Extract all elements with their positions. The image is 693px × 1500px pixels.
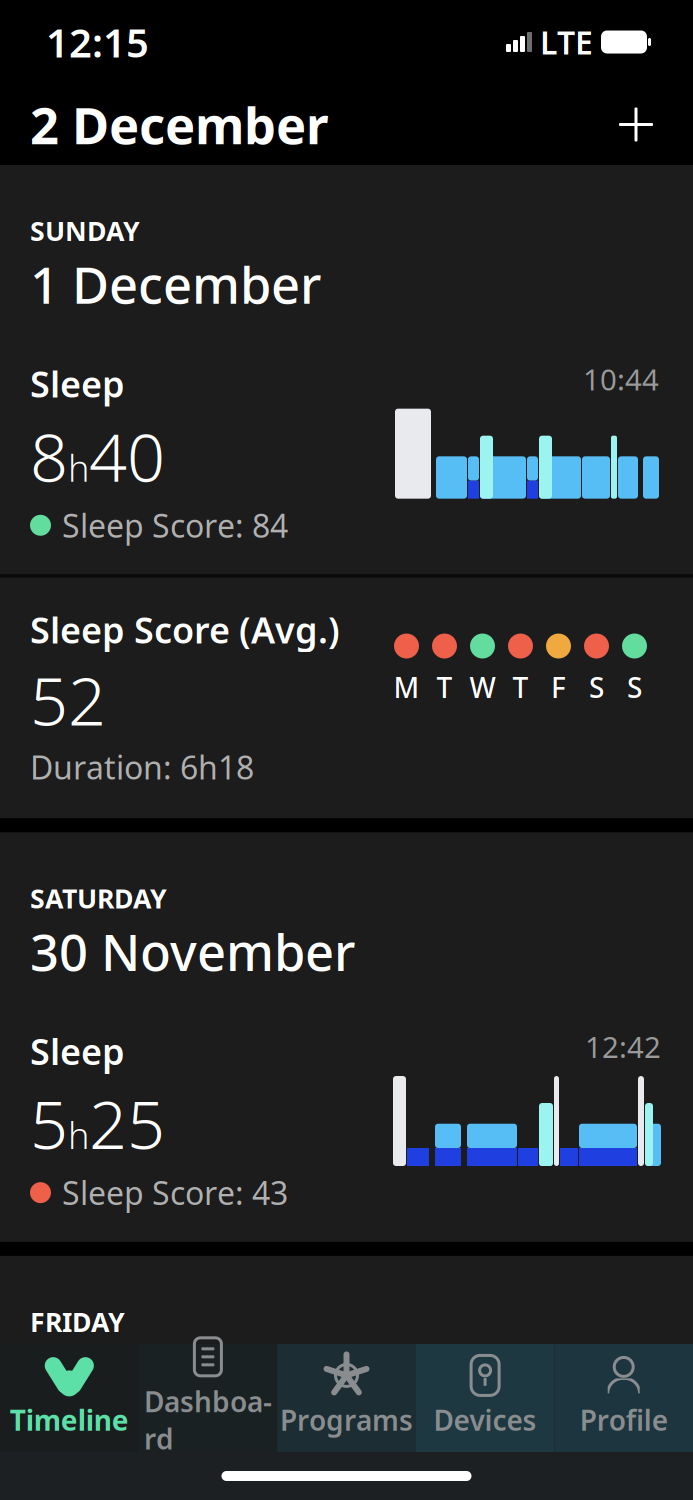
- button[interactable]: Programs: [277, 1349, 416, 1443]
- staticText: SUNDAY: [30, 213, 140, 248]
- staticText: 40: [89, 411, 165, 500]
- staticText: 52: [30, 655, 106, 744]
- button[interactable]: Devices: [416, 1349, 554, 1443]
- staticText: 29 November: [30, 1341, 355, 1409]
- staticText: Devices: [434, 1401, 537, 1439]
- button[interactable]: FRIDAY: [0, 1256, 693, 1500]
- staticText: W: [469, 668, 495, 706]
- staticText: Programs: [280, 1401, 413, 1439]
- staticText: h: [68, 1111, 89, 1159]
- staticText: Sleep Score: 84: [62, 504, 288, 546]
- staticText: Sleep Score: 43: [62, 1171, 288, 1214]
- staticText: 25: [89, 1079, 165, 1167]
- staticText: LTE: [540, 21, 593, 63]
- button[interactable]: Profile: [554, 1349, 693, 1443]
- button[interactable]: Sleep Score (Avg.): [0, 577, 693, 818]
- staticText: Sleep: [30, 1027, 125, 1075]
- staticText: 8: [30, 411, 68, 500]
- button[interactable]: SATURDAY: [0, 832, 693, 1242]
- staticText: 10:44: [583, 360, 659, 399]
- staticText: Timeline: [10, 1401, 129, 1439]
- staticText: Sleep: [30, 360, 125, 407]
- button[interactable]: Dashboard: [139, 1331, 277, 1461]
- staticText: 1 December: [30, 250, 321, 318]
- staticText: Profile: [580, 1401, 668, 1439]
- staticText: S: [589, 668, 604, 706]
- staticText: 12:15: [46, 15, 149, 68]
- staticText: T: [512, 668, 528, 706]
- staticText: T: [436, 668, 452, 706]
- staticText: M: [393, 668, 419, 706]
- staticText: 5: [30, 1079, 68, 1167]
- button[interactable]: SUNDAY: [0, 165, 693, 574]
- staticText: 10:56: [570, 1451, 646, 1490]
- staticText: Duration: 6h18: [30, 746, 254, 788]
- staticText: Sleep Score (Avg.): [30, 605, 340, 653]
- button[interactable]: Add: [609, 97, 663, 151]
- button[interactable]: Timeline: [0, 1349, 139, 1443]
- staticText: 2 December: [30, 91, 329, 158]
- staticText: SATURDAY: [30, 880, 167, 916]
- staticText: 30 November: [30, 918, 355, 985]
- staticText: h: [68, 444, 89, 492]
- staticText: FRIDAY: [30, 1304, 125, 1339]
- staticText: S: [627, 668, 642, 706]
- staticText: 12:42: [585, 1027, 661, 1066]
- staticText: Dashboard: [144, 1383, 272, 1457]
- staticText: F: [551, 668, 566, 706]
